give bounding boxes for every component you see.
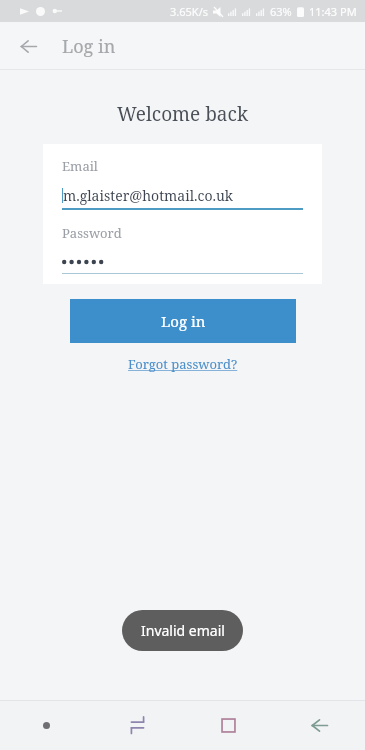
staticText: Welcome back	[0, 101, 365, 127]
button[interactable]: Recents	[183, 701, 274, 750]
button[interactable]: Back	[8, 26, 48, 66]
staticText: 63%	[270, 4, 292, 19]
staticText: Log in	[161, 311, 206, 331]
staticText: 3.65K/s	[170, 4, 208, 19]
staticText: Email	[62, 157, 98, 175]
staticText: 11:43 PM	[309, 4, 357, 19]
staticText: Invalid email	[141, 621, 225, 640]
button[interactable]: m.glaister@hotmail.co.uk	[62, 186, 303, 205]
button[interactable]: Forgot password?	[122, 353, 244, 375]
button[interactable]: Switch	[92, 701, 183, 750]
staticText: Log in	[62, 34, 116, 59]
button[interactable]	[62, 254, 303, 270]
staticText: Forgot password?	[128, 355, 238, 373]
button[interactable]: Log in	[70, 299, 296, 343]
button[interactable]: Back	[274, 701, 365, 750]
staticText: Password	[62, 224, 122, 242]
button[interactable]: Home	[0, 701, 92, 750]
staticText: m.glaister@hotmail.co.uk	[63, 186, 234, 205]
